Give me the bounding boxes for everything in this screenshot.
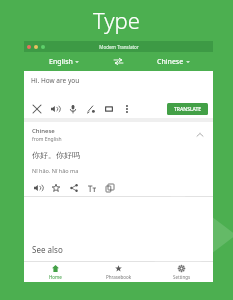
- staticText: Phrasebook: [106, 274, 132, 280]
- button[interactable]: Chinese: [24, 122, 213, 148]
- staticText: Type: [93, 5, 140, 35]
- button[interactable]: More options: [118, 100, 136, 118]
- button[interactable]: Chinese: [133, 52, 213, 71]
- staticText: from English: [32, 136, 62, 143]
- button[interactable]: Settings: [150, 262, 213, 282]
- button[interactable]: Text size: [83, 179, 101, 196]
- button[interactable]: Home: [24, 262, 87, 282]
- staticText: Chinese: [32, 127, 55, 135]
- staticText: 你好。你好吗: [32, 150, 80, 160]
- button[interactable]: Share: [65, 179, 83, 196]
- staticText: Chinese: [157, 57, 184, 67]
- staticText: See also: [32, 244, 63, 255]
- other: Collapse: [191, 126, 209, 144]
- staticText: Nǐ hǎo. Nǐ hǎo ma: [32, 167, 79, 174]
- button[interactable]: Listen: [46, 100, 64, 118]
- button[interactable]: English: [24, 52, 103, 71]
- button[interactable]: Save to phrasebook: [47, 179, 65, 196]
- button[interactable]: Phrasebook: [87, 262, 150, 282]
- button[interactable]: Handwriting: [82, 100, 100, 118]
- staticText: Hi. How are you: [31, 76, 80, 85]
- button[interactable]: TRANSLATE: [167, 103, 208, 115]
- button[interactable]: Listen: [29, 179, 47, 196]
- staticText: Settings: [173, 274, 191, 280]
- staticText: Modern Translator: [99, 44, 139, 50]
- staticText: Home: [49, 274, 62, 280]
- staticText: English: [49, 57, 73, 67]
- staticText: TRANSLATE: [174, 106, 202, 113]
- button[interactable]: Hi. How are you: [24, 71, 213, 99]
- button[interactable]: Copy: [101, 179, 119, 196]
- button[interactable]: See also: [24, 237, 213, 261]
- button[interactable]: Voice input: [64, 100, 82, 118]
- button[interactable]: Swap languages: [103, 52, 133, 71]
- button[interactable]: Clear: [28, 100, 46, 118]
- button[interactable]: Camera input: [100, 100, 118, 118]
